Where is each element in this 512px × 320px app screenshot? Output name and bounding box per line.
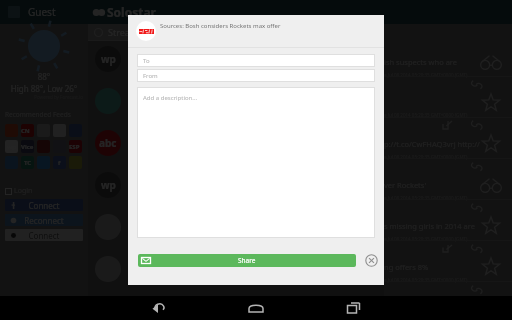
staticText: CNN bbox=[21, 127, 34, 135]
button[interactable]: Favourite bbox=[476, 215, 506, 237]
staticText: Share bbox=[238, 256, 256, 265]
button[interactable]: Feed bbox=[69, 140, 82, 153]
button[interactable]: Favourite bbox=[476, 133, 506, 155]
button[interactable]: Mark as read bbox=[476, 174, 506, 196]
button[interactable]: Home bbox=[234, 296, 278, 320]
button[interactable]: Copy link bbox=[471, 244, 482, 253]
button[interactable]: Source bbox=[95, 214, 121, 240]
button[interactable]: Source bbox=[95, 172, 121, 198]
button[interactable]: Close bbox=[363, 252, 380, 269]
button[interactable]: Back bbox=[137, 296, 181, 320]
staticText: Add a description... bbox=[143, 94, 198, 102]
button[interactable]: Copy link bbox=[471, 80, 482, 89]
button[interactable]: Connect bbox=[5, 199, 83, 211]
staticText: To bbox=[143, 57, 150, 65]
staticText: Sources: Bosh considers Rockets max offe… bbox=[160, 22, 281, 30]
staticText: wp bbox=[101, 52, 116, 66]
staticText: High 88°, Low 26° bbox=[5, 83, 83, 94]
staticText: Connect bbox=[11, 200, 77, 211]
button[interactable]: Recents bbox=[331, 296, 375, 320]
staticText: Vice bbox=[21, 143, 34, 151]
button[interactable]: Add a description... bbox=[137, 87, 375, 238]
staticText: Recommended Feeds bbox=[5, 110, 71, 119]
button[interactable]: Favourite bbox=[476, 256, 506, 278]
button[interactable]: Open in browser bbox=[442, 244, 453, 253]
button[interactable]: Feed bbox=[21, 156, 34, 169]
button[interactable]: Feed bbox=[21, 140, 34, 153]
staticText: Stream bbox=[108, 26, 139, 38]
button[interactable]: From bbox=[137, 69, 375, 82]
button[interactable]: Feed bbox=[53, 156, 66, 169]
staticText: abc bbox=[99, 136, 117, 150]
staticText: Solostar bbox=[107, 4, 156, 20]
button[interactable]: Reconnect bbox=[5, 214, 83, 226]
button[interactable]: Source bbox=[95, 256, 121, 282]
button[interactable]: Feed bbox=[21, 124, 34, 137]
staticText: wp bbox=[101, 178, 116, 192]
button[interactable]: Mark as read bbox=[476, 51, 506, 73]
button[interactable]: Favourite bbox=[476, 92, 506, 114]
staticText: Guest bbox=[28, 5, 56, 19]
button[interactable]: Source bbox=[95, 46, 121, 72]
button[interactable]: Copy link bbox=[471, 120, 482, 130]
button[interactable]: Copy link bbox=[471, 203, 482, 212]
button[interactable]: Share bbox=[138, 254, 356, 267]
staticText: Login bbox=[14, 186, 33, 196]
staticText: Connect bbox=[11, 230, 77, 241]
staticText: s missing girls in 2014 are bbox=[384, 221, 475, 231]
button[interactable]: Source bbox=[95, 130, 121, 156]
staticText: f bbox=[58, 159, 61, 167]
staticText: p://t.co/CwFHAQ3vrj http://t. bbox=[384, 139, 482, 149]
staticText: TC bbox=[24, 159, 32, 167]
button[interactable]: Connect bbox=[5, 229, 83, 241]
staticText: 88° bbox=[5, 71, 83, 82]
staticText: From bbox=[143, 72, 158, 80]
button[interactable]: to aid the families bbox=[384, 294, 512, 320]
button[interactable]: Copy link bbox=[471, 162, 482, 171]
button[interactable]: Copy link bbox=[471, 285, 482, 294]
staticText: Reconnect bbox=[11, 215, 77, 226]
staticText: ish suspects who are believed bbox=[384, 57, 482, 67]
button[interactable]: Source bbox=[95, 88, 121, 114]
button[interactable]: To bbox=[137, 54, 375, 67]
button[interactable]: Open in browser bbox=[442, 120, 453, 130]
staticText: ESPN bbox=[69, 143, 82, 151]
staticText: ng offers 8% bbox=[384, 262, 429, 272]
